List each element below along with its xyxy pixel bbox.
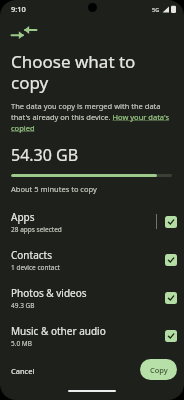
staticText: Cancel — [11, 366, 35, 376]
staticText: Contacts — [11, 248, 52, 262]
button[interactable]: Apps — [0, 208, 184, 235]
button[interactable]: Copy — [140, 359, 177, 380]
staticText: 1 device contact — [11, 263, 60, 272]
button[interactable]: Cancel — [0, 361, 46, 381]
button[interactable]: Photos & videos — [0, 284, 184, 311]
staticText: 28 apps selected — [11, 225, 62, 234]
staticText: Choose what to copy — [11, 50, 176, 94]
staticText: 5.0 MB — [11, 339, 32, 348]
button[interactable]: The data you copy is merged with the dat… — [11, 101, 171, 133]
button[interactable]: Photos & videos selected — [165, 292, 177, 304]
button[interactable]: Contacts — [0, 246, 184, 273]
staticText: About 5 minutes to copy — [11, 184, 97, 194]
staticText: Photos & videos — [11, 286, 87, 300]
staticText: Copy — [150, 365, 168, 375]
button[interactable]: Music & other audio — [0, 322, 184, 349]
staticText: 9:10 — [11, 4, 26, 14]
staticText: 49.3 GB — [11, 301, 35, 310]
button[interactable]: Contacts selected — [165, 254, 177, 266]
staticText: 54.30 GB — [11, 144, 79, 166]
staticText: 5G — [152, 6, 160, 13]
button[interactable]: Apps selected — [165, 216, 177, 228]
staticText: Apps — [11, 210, 35, 224]
staticText: Music & other audio — [11, 324, 106, 338]
button[interactable]: Music & other audio selected — [165, 330, 177, 342]
other: Transfer — [11, 24, 37, 42]
